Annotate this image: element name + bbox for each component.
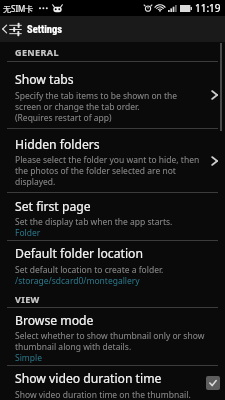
staticText: GENERAL [15, 46, 59, 58]
staticText: Show video duration time on the thumbnai… [15, 389, 191, 400]
staticText: Show tabs [15, 71, 74, 88]
staticText: Default folder location [15, 245, 143, 262]
button[interactable]: Hidden folders [0, 129, 225, 192]
button[interactable]: Show video duration time [0, 366, 225, 400]
staticText: 无SIM卡 [3, 3, 34, 14]
staticText: Set the display tab when the app starts.… [15, 216, 173, 238]
button[interactable]: Default folder location [0, 241, 225, 288]
staticText: Show video duration time [15, 370, 162, 387]
staticText: Set default location to create a folder.… [15, 264, 164, 286]
staticText: 11:19 [195, 1, 221, 15]
staticText: Select whether to show thumbnail only or… [15, 330, 205, 363]
staticText: Set first page [15, 198, 91, 215]
button[interactable]: Set first page [0, 193, 225, 240]
staticText: Hidden folders [15, 136, 100, 153]
button[interactable]: Show tabs [0, 62, 225, 128]
staticText: Please select the folder you want to hid… [15, 154, 200, 187]
staticText: Browse mode [15, 312, 94, 329]
staticText: Specify the tab items to be shown on the… [15, 90, 178, 123]
staticText: VIEW [15, 293, 40, 305]
button[interactable]: Browse mode [0, 308, 225, 365]
staticText: Settings [27, 23, 62, 35]
button[interactable]: Back [0, 16, 23, 42]
